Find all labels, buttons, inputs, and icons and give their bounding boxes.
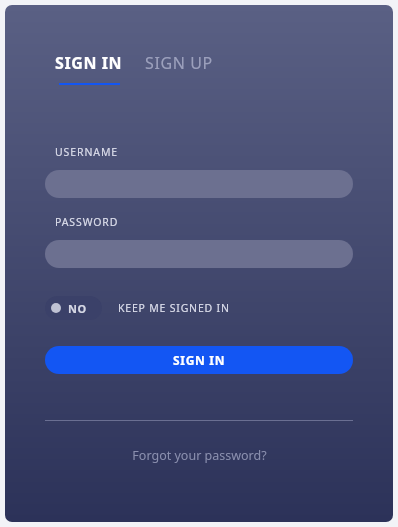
button[interactable]: SIGN IN [45,346,353,374]
button[interactable]: Keep me signed in toggle, off [45,296,102,320]
button[interactable]: SIGN IN [50,52,128,85]
staticText: SIGN UP [145,52,213,74]
staticText: USERNAME [55,145,119,159]
button[interactable]: KEEP ME SIGNED IN [118,301,230,315]
staticText: SIGN IN [173,352,226,368]
button[interactable] [45,240,353,268]
staticText: SIGN IN [55,52,123,74]
button[interactable]: Forgot your password? [5,447,393,464]
button[interactable] [45,170,353,198]
staticText: Forgot your password? [132,447,267,464]
button[interactable]: SIGN UP [140,52,218,74]
staticText: PASSWORD [55,215,119,229]
staticText: NO [68,301,87,316]
